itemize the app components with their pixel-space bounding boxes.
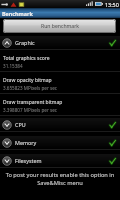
staticText: Total graphics score bbox=[3, 55, 50, 62]
staticText: To post your results enable this option … bbox=[3, 171, 117, 187]
other: Expand section bbox=[2, 138, 12, 148]
staticText: 3.398807 MPixels per sec bbox=[3, 107, 57, 113]
staticText: Run benchmark bbox=[41, 23, 79, 30]
staticText: Filesystem bbox=[15, 157, 109, 164]
button[interactable]: Total graphics score bbox=[0, 50, 120, 72]
staticText: CPU bbox=[15, 121, 109, 128]
button[interactable]: Run benchmark bbox=[3, 19, 116, 33]
staticText: Memory bbox=[15, 139, 109, 146]
button[interactable]: Expand section bbox=[0, 118, 120, 131]
button[interactable]: Draw transparent bitmap bbox=[0, 94, 120, 116]
other: Collapse section bbox=[2, 38, 12, 48]
staticText: Draw transparent bitmap bbox=[3, 99, 63, 106]
button[interactable]: Collapse section bbox=[0, 36, 120, 49]
staticText: 3.655823 MPixels per sec bbox=[3, 85, 57, 91]
other: Expand section bbox=[2, 120, 12, 130]
staticText: 31.15384 bbox=[3, 63, 23, 69]
button[interactable]: Expand section bbox=[0, 154, 120, 167]
staticText: Draw opacity bitmap bbox=[3, 77, 52, 84]
staticText: Benchmark bbox=[2, 10, 33, 17]
staticText: Graphic bbox=[15, 39, 109, 46]
button[interactable]: Expand section bbox=[0, 136, 120, 149]
other: Expand section bbox=[2, 156, 12, 166]
button[interactable]: Draw opacity bitmap bbox=[0, 72, 120, 94]
staticText: 13:50 bbox=[105, 1, 119, 8]
